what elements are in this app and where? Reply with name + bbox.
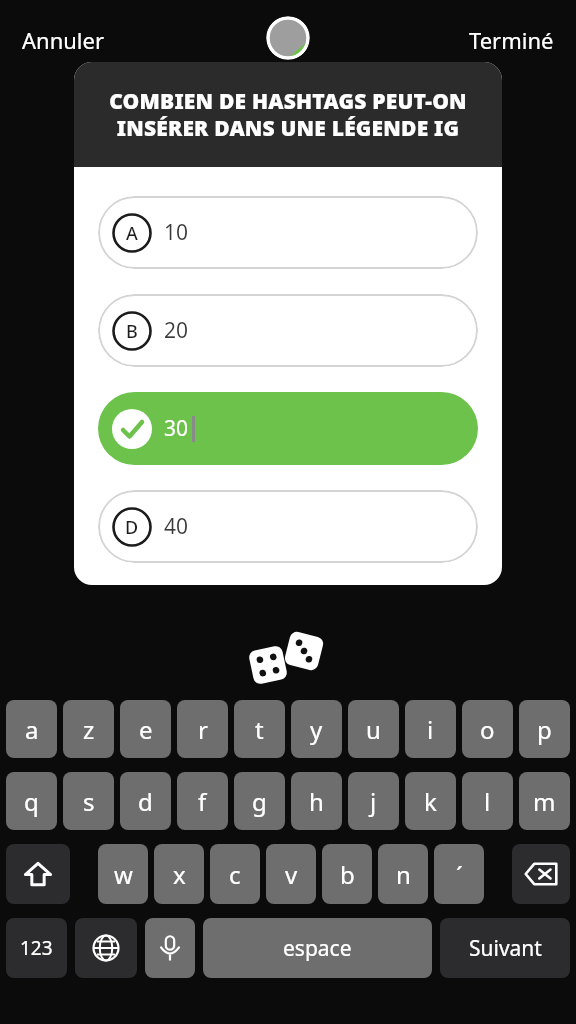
staticText: j: [370, 785, 377, 818]
staticText: 30: [164, 414, 189, 443]
button[interactable]: j: [348, 772, 399, 830]
staticText: h: [309, 785, 324, 818]
staticText: d: [138, 785, 153, 818]
staticText: i: [427, 713, 434, 746]
button[interactable]: Changer de clavier: [75, 918, 137, 978]
button[interactable]: Progression: [266, 16, 310, 60]
staticText: t: [255, 713, 264, 746]
staticText: 20: [164, 316, 189, 345]
staticText: ´: [456, 858, 463, 891]
staticText: m: [533, 785, 556, 818]
staticText: o: [480, 713, 495, 746]
staticText: b: [340, 858, 355, 891]
staticText: n: [396, 858, 411, 891]
staticText: f: [198, 785, 207, 818]
staticText: A: [126, 221, 138, 246]
staticText: y: [310, 713, 323, 746]
staticText: Terminé: [469, 25, 554, 55]
button[interactable]: w: [98, 844, 148, 904]
button[interactable]: A: [98, 196, 478, 269]
staticText: w: [114, 858, 133, 891]
button[interactable]: d: [120, 772, 171, 830]
button[interactable]: v: [266, 844, 316, 904]
staticText: v: [285, 858, 298, 891]
staticText: 123: [20, 935, 53, 961]
staticText: Annuler: [22, 25, 105, 55]
button[interactable]: q: [6, 772, 57, 830]
staticText: p: [537, 713, 552, 746]
button[interactable]: ´: [434, 844, 484, 904]
button[interactable]: Terminé: [461, 19, 562, 61]
button[interactable]: Supprimer: [512, 844, 570, 904]
button[interactable]: Dés: [243, 630, 333, 690]
button[interactable]: o: [462, 700, 513, 758]
staticText: c: [229, 858, 241, 891]
button[interactable]: 30: [98, 392, 478, 465]
button[interactable]: Majuscule: [6, 844, 70, 904]
staticText: 40: [164, 512, 189, 541]
staticText: a: [25, 713, 39, 746]
button[interactable]: y: [291, 700, 342, 758]
button[interactable]: 123: [6, 918, 67, 978]
staticText: B: [126, 319, 138, 344]
staticText: r: [198, 713, 208, 746]
button[interactable]: D: [98, 490, 478, 563]
staticText: espace: [283, 934, 352, 963]
staticText: u: [366, 713, 381, 746]
button[interactable]: c: [210, 844, 260, 904]
button[interactable]: g: [234, 772, 285, 830]
staticText: g: [252, 785, 267, 818]
staticText: e: [139, 713, 153, 746]
button[interactable]: f: [177, 772, 228, 830]
staticText: Suivant: [469, 934, 542, 963]
button[interactable]: t: [234, 700, 285, 758]
button[interactable]: e: [120, 700, 171, 758]
button[interactable]: r: [177, 700, 228, 758]
button[interactable]: l: [462, 772, 513, 830]
staticText: D: [125, 515, 139, 540]
staticText: x: [173, 858, 186, 891]
button[interactable]: B: [98, 294, 478, 367]
staticText: k: [424, 785, 437, 818]
button[interactable]: Dictée: [145, 918, 195, 978]
button[interactable]: s: [63, 772, 114, 830]
staticText: q: [24, 785, 39, 818]
button[interactable]: n: [378, 844, 428, 904]
button[interactable]: k: [405, 772, 456, 830]
staticText: l: [484, 785, 491, 818]
button[interactable]: b: [322, 844, 372, 904]
staticText: s: [83, 785, 95, 818]
button[interactable]: h: [291, 772, 342, 830]
button[interactable]: Annuler: [14, 19, 113, 61]
button[interactable]: p: [519, 700, 570, 758]
button[interactable]: Suivant: [440, 918, 570, 978]
button[interactable]: a: [6, 700, 57, 758]
staticText: 10: [164, 218, 189, 247]
button[interactable]: z: [63, 700, 114, 758]
button[interactable]: i: [405, 700, 456, 758]
button[interactable]: espace: [203, 918, 432, 978]
button[interactable]: x: [154, 844, 204, 904]
button[interactable]: u: [348, 700, 399, 758]
staticText: COMBIEN DE HASHTAGS PEUT-ON INSÉRER DANS…: [109, 87, 467, 142]
button[interactable]: m: [519, 772, 570, 830]
staticText: z: [83, 713, 95, 746]
